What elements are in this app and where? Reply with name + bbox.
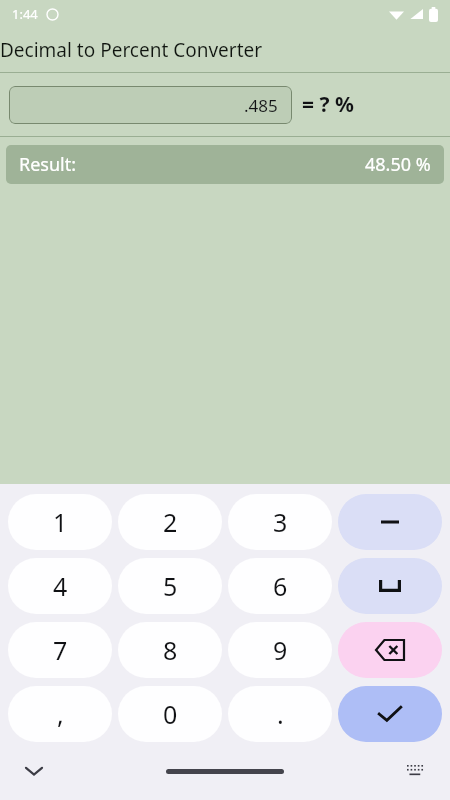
staticText: Result:: [19, 152, 77, 177]
staticText: 9: [273, 633, 288, 667]
button[interactable]: 3: [228, 494, 332, 550]
button[interactable]: .485: [9, 86, 292, 124]
button[interactable]: 4: [8, 558, 112, 614]
button[interactable]: 8: [118, 622, 222, 678]
staticText: 7: [53, 633, 68, 667]
staticText: .: [277, 697, 284, 731]
button[interactable]: 6: [228, 558, 332, 614]
staticText: 4: [53, 569, 68, 603]
staticText: 8: [163, 633, 178, 667]
button[interactable]: Enter: [338, 686, 442, 742]
staticText: ,: [57, 697, 64, 731]
button[interactable]: 0: [118, 686, 222, 742]
button[interactable]: 7: [8, 622, 112, 678]
button[interactable]: Backspace: [338, 622, 442, 678]
button[interactable]: Hide keyboard: [14, 751, 54, 791]
staticText: 6: [273, 569, 288, 603]
button[interactable]: Minus: [338, 494, 442, 550]
button[interactable]: Space: [338, 558, 442, 614]
staticText: Decimal to Percent Converter: [0, 37, 263, 63]
staticText: .485: [244, 94, 278, 117]
staticText: 48.50 %: [365, 152, 431, 177]
staticText: 0: [163, 697, 178, 731]
button[interactable]: .: [228, 686, 332, 742]
staticText: 2: [163, 505, 178, 539]
button[interactable]: 5: [118, 558, 222, 614]
button[interactable]: ,: [8, 686, 112, 742]
button[interactable]: 2: [118, 494, 222, 550]
button[interactable]: Result:: [6, 145, 444, 184]
staticText: 1:44: [12, 5, 38, 23]
staticText: 5: [163, 569, 178, 603]
staticText: 1: [53, 505, 68, 539]
staticText: 3: [273, 505, 288, 539]
staticText: = ? %: [302, 90, 354, 119]
button[interactable]: 9: [228, 622, 332, 678]
button[interactable]: Switch keyboard: [396, 751, 436, 791]
button[interactable]: 1: [8, 494, 112, 550]
